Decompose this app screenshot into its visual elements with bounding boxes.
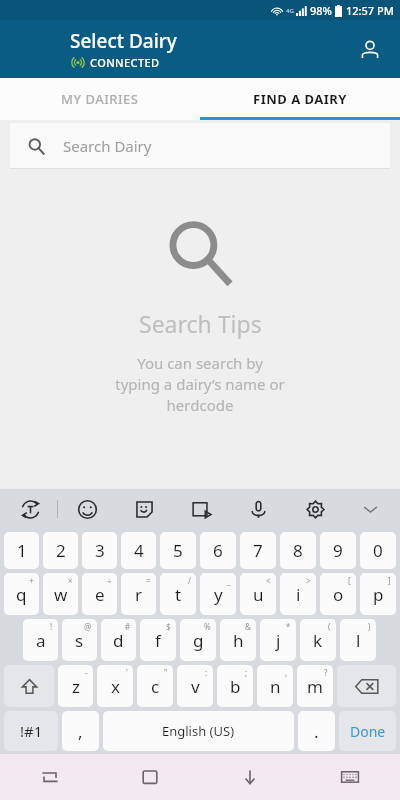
staticText: e bbox=[95, 583, 105, 606]
button[interactable]: y bbox=[200, 573, 236, 615]
staticText: o bbox=[333, 583, 344, 606]
button[interactable]: !#1 bbox=[4, 711, 58, 751]
staticText: 7 bbox=[253, 539, 263, 562]
button[interactable]: w bbox=[43, 573, 78, 615]
staticText: 98% bbox=[310, 3, 332, 18]
button[interactable]: Backspace bbox=[337, 665, 396, 707]
button[interactable]: g bbox=[180, 619, 216, 661]
button[interactable]: 8 bbox=[280, 532, 316, 569]
button[interactable]: n bbox=[257, 665, 293, 707]
button[interactable]: c bbox=[137, 665, 173, 707]
button[interactable]: Back bbox=[200, 754, 300, 800]
staticText: 6 bbox=[213, 539, 223, 562]
staticText: 12:57 PM bbox=[346, 3, 394, 18]
button[interactable]: Switch keyboard bbox=[300, 754, 400, 800]
button[interactable]: 1 bbox=[4, 532, 39, 569]
staticText: ! bbox=[50, 621, 53, 632]
button[interactable]: h bbox=[220, 619, 256, 661]
staticText: !#1 bbox=[20, 721, 43, 741]
staticText: 9 bbox=[333, 539, 343, 562]
staticText: 8 bbox=[293, 539, 303, 562]
button[interactable]: d bbox=[101, 619, 136, 661]
staticText: r bbox=[135, 583, 143, 606]
staticText: d bbox=[113, 629, 124, 652]
button[interactable]: a bbox=[23, 619, 58, 661]
staticText: b bbox=[230, 675, 241, 698]
button[interactable]: Settings bbox=[287, 489, 344, 529]
button[interactable]: 7 bbox=[240, 532, 276, 569]
button[interactable]: 4 bbox=[121, 532, 156, 569]
button[interactable]: Search Dairy bbox=[10, 123, 390, 169]
staticText: 4 bbox=[134, 539, 144, 562]
button[interactable]: Emoji bbox=[58, 489, 116, 529]
staticText: ] bbox=[388, 575, 391, 586]
staticText: 0 bbox=[373, 539, 383, 562]
button[interactable]: Done bbox=[339, 711, 396, 751]
button[interactable]: i bbox=[280, 573, 316, 615]
staticText: l bbox=[356, 629, 361, 652]
button[interactable]: p bbox=[360, 573, 396, 615]
button[interactable]: 5 bbox=[160, 532, 196, 569]
button[interactable]: k bbox=[300, 619, 336, 661]
button[interactable]: FIND A DAIRY bbox=[200, 78, 400, 120]
staticText: / bbox=[188, 575, 191, 586]
staticText: FIND A DAIRY bbox=[253, 90, 348, 108]
button[interactable]: e bbox=[82, 573, 117, 615]
button[interactable]: j bbox=[260, 619, 296, 661]
button[interactable]: m bbox=[297, 665, 333, 707]
staticText: k bbox=[313, 629, 323, 652]
button[interactable]: z bbox=[58, 665, 93, 707]
button[interactable]: r bbox=[121, 573, 156, 615]
staticText: m bbox=[307, 675, 323, 698]
staticText: f bbox=[155, 629, 161, 652]
staticText: Done bbox=[350, 722, 386, 741]
staticText: @ bbox=[84, 621, 92, 632]
button[interactable]: b bbox=[217, 665, 253, 707]
button[interactable]: q bbox=[4, 573, 39, 615]
button[interactable]: Recents bbox=[0, 754, 100, 800]
staticText: = bbox=[146, 575, 151, 586]
button[interactable]: Shift bbox=[4, 665, 54, 707]
button[interactable]: 2 bbox=[43, 532, 78, 569]
button[interactable]: Home bbox=[100, 754, 200, 800]
button[interactable]: 6 bbox=[200, 532, 236, 569]
button[interactable]: MY DAIRIES bbox=[0, 78, 200, 120]
button[interactable]: Translate bbox=[4, 489, 57, 529]
staticText: - bbox=[85, 667, 88, 678]
staticText: j bbox=[276, 629, 281, 652]
button[interactable]: s bbox=[62, 619, 97, 661]
button[interactable]: Collapse bbox=[344, 489, 396, 529]
staticText: 1 bbox=[17, 539, 27, 562]
button[interactable]: 3 bbox=[82, 532, 117, 569]
staticText: CONNECTED bbox=[90, 55, 160, 70]
button[interactable]: o bbox=[320, 573, 356, 615]
staticText: q bbox=[16, 583, 27, 606]
staticText: % bbox=[204, 621, 211, 632]
staticText: " bbox=[164, 667, 168, 678]
button[interactable]: f bbox=[140, 619, 176, 661]
staticText: h bbox=[233, 629, 244, 652]
button[interactable]: 9 bbox=[320, 532, 356, 569]
button[interactable]: Voice input bbox=[230, 489, 287, 529]
button[interactable]: Stickers bbox=[116, 489, 173, 529]
staticText: [ bbox=[348, 575, 351, 586]
button[interactable]: . bbox=[298, 711, 335, 751]
staticText: < bbox=[266, 575, 271, 586]
staticText: c bbox=[151, 675, 160, 698]
button[interactable]: t bbox=[160, 573, 196, 615]
button[interactable]: l bbox=[340, 619, 376, 661]
button[interactable]: v bbox=[177, 665, 213, 707]
staticText: ' bbox=[126, 667, 128, 678]
button[interactable]: x bbox=[97, 665, 133, 707]
staticText: Select Dairy bbox=[70, 28, 177, 54]
staticText: 5 bbox=[173, 539, 183, 562]
staticText: i bbox=[296, 583, 301, 606]
button[interactable]: English (US) bbox=[103, 711, 294, 751]
staticText: , bbox=[78, 720, 83, 743]
button[interactable]: 0 bbox=[360, 532, 396, 569]
staticText: s bbox=[75, 629, 84, 652]
button[interactable]: GIF bbox=[173, 489, 230, 529]
button[interactable]: , bbox=[62, 711, 99, 751]
button[interactable]: Account bbox=[350, 29, 390, 69]
button[interactable]: u bbox=[240, 573, 276, 615]
